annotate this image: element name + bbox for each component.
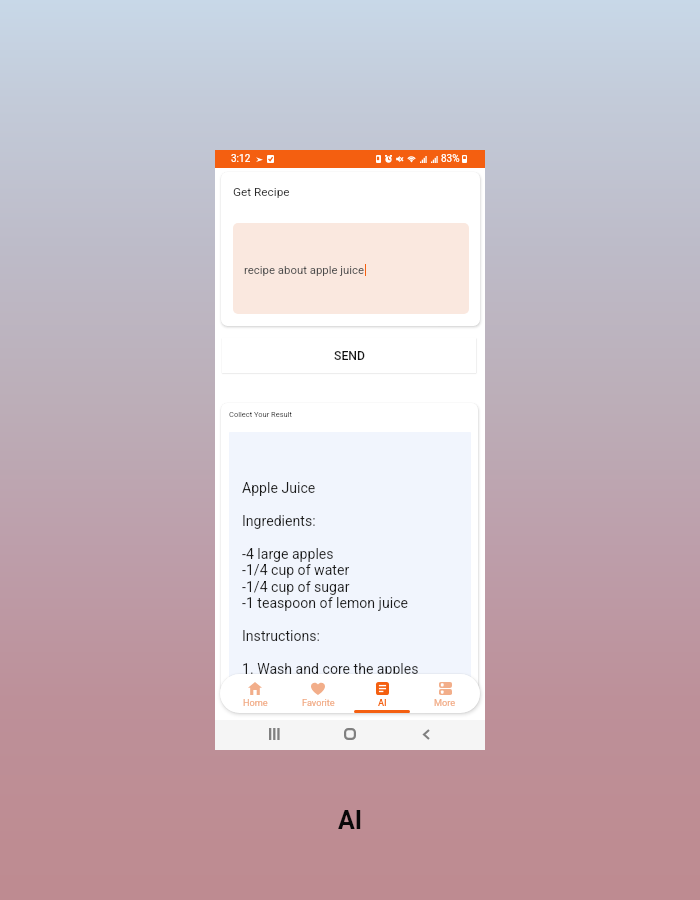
- staticText: 83%: [441, 153, 460, 165]
- staticText: Favorite: [302, 697, 335, 708]
- button[interactable]: More: [417, 674, 473, 713]
- staticText: Home: [243, 697, 268, 708]
- button[interactable]: SEND: [222, 338, 476, 373]
- staticText: AI: [378, 697, 387, 708]
- staticText: 1. Wash and core the apples: [242, 661, 419, 678]
- staticText: AI: [338, 806, 363, 835]
- button[interactable]: recipe about apple juice: [233, 223, 469, 314]
- staticText: -1/4 cup of sugar: [242, 579, 350, 596]
- button[interactable]: Back: [415, 722, 437, 746]
- button[interactable]: AI: [354, 674, 410, 713]
- staticText: Apple Juice: [242, 480, 316, 497]
- button[interactable]: Home: [339, 722, 361, 746]
- staticText: -1 teaspoon of lemon juice: [242, 595, 409, 612]
- button[interactable]: Home: [227, 674, 283, 713]
- button[interactable]: Recents: [263, 722, 285, 746]
- staticText: Ingredients:: [242, 513, 316, 530]
- staticText: Collect Your Result: [229, 410, 292, 419]
- staticText: SEND: [334, 349, 365, 363]
- staticText: Instructions:: [242, 628, 320, 645]
- staticText: recipe about apple juice: [244, 263, 365, 276]
- button[interactable]: Favorite: [290, 674, 346, 713]
- staticText: 3:12: [231, 153, 251, 165]
- staticText: -1/4 cup of water: [242, 562, 350, 579]
- staticText: More: [434, 697, 456, 708]
- staticText: -4 large apples: [242, 546, 334, 563]
- staticText: Get Recipe: [233, 185, 290, 199]
